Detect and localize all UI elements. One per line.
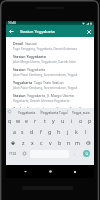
button[interactable]: Yogyakarta bbox=[6, 79, 94, 92]
button[interactable]: v bbox=[46, 137, 55, 148]
button[interactable]: Recent apps bbox=[69, 166, 80, 177]
button[interactable]: ?123 bbox=[6, 148, 20, 159]
staticText: ?123 bbox=[9, 151, 17, 156]
staticText: Stasiun Yogyakarta bbox=[20, 29, 55, 34]
button[interactable]: x bbox=[28, 137, 37, 148]
staticText: e bbox=[25, 117, 28, 124]
button[interactable]: Clear search bbox=[83, 26, 94, 37]
staticText: m bbox=[75, 139, 80, 146]
button[interactable]: Voice search bbox=[6, 108, 13, 115]
staticText: j bbox=[67, 128, 69, 135]
button[interactable]: j bbox=[63, 126, 72, 137]
staticText: Stasiun Yogyakarta bbox=[13, 54, 46, 59]
button[interactable]: y bbox=[49, 115, 58, 126]
staticText: r bbox=[34, 117, 37, 124]
button[interactable]: Yogya_auto bbox=[68, 108, 94, 115]
button[interactable]: a bbox=[10, 126, 18, 137]
button[interactable]: i bbox=[67, 115, 76, 126]
button[interactable]: m bbox=[73, 137, 82, 148]
staticText: Jalan Margo Utomo, Yogyakarta, Daerah Is… bbox=[13, 60, 77, 64]
button[interactable]: Angkut bbox=[6, 105, 94, 108]
staticText: Jalan Pasar Kembang, Sosromenduran, Yogy… bbox=[13, 86, 78, 90]
staticText: h bbox=[57, 128, 61, 135]
staticText: s bbox=[21, 128, 24, 135]
staticText: Yogya_auto bbox=[72, 110, 90, 114]
staticText: Yogyakarta, Jl. Margo Utomo bbox=[26, 93, 74, 98]
button[interactable]: u bbox=[58, 115, 67, 126]
button[interactable]: e bbox=[22, 115, 31, 126]
button[interactable]: q bbox=[6, 115, 14, 126]
button[interactable]: Detail bbox=[6, 40, 94, 53]
staticText: Yogyakarta Tugu bbox=[41, 110, 67, 114]
staticText: Stasiun bbox=[24, 41, 37, 46]
staticText: t bbox=[44, 117, 46, 124]
staticText: i bbox=[71, 117, 73, 124]
button[interactable]: Stasiun Yogyakarta bbox=[6, 53, 94, 66]
staticText: Jalan Pasar Kembang, Sosromenduran, Yogy… bbox=[13, 73, 78, 77]
staticText: Detail bbox=[13, 41, 24, 46]
staticText: Yogyakarta, Daerah Istimewa Yogyakarta bbox=[13, 99, 70, 103]
button[interactable]: o bbox=[76, 115, 85, 126]
staticText: k bbox=[75, 128, 78, 135]
button[interactable]: w bbox=[14, 115, 22, 126]
staticText: y bbox=[52, 117, 55, 124]
staticText: a bbox=[13, 128, 16, 135]
staticText: b bbox=[58, 139, 62, 146]
staticText: Stasiun bbox=[13, 67, 27, 72]
button[interactable]: s bbox=[18, 126, 27, 137]
button[interactable]: g bbox=[45, 126, 54, 137]
button[interactable]: z bbox=[19, 137, 28, 148]
staticText: Executive Lounge Stasiun Tugu Yo bbox=[26, 106, 83, 108]
staticText: f bbox=[40, 128, 42, 135]
staticText: n bbox=[67, 139, 71, 146]
staticText: Tugu Panggung, Yogyakarta, Daerah Istime… bbox=[13, 47, 77, 51]
staticText: o bbox=[79, 117, 83, 124]
button[interactable]: r bbox=[31, 115, 40, 126]
staticText: w bbox=[16, 117, 21, 124]
button[interactable]: Shift bbox=[6, 137, 19, 148]
button[interactable]: c bbox=[37, 137, 46, 148]
staticText: Yogyakarta bbox=[18, 110, 36, 114]
button[interactable]: d bbox=[27, 126, 36, 137]
staticText: Yogyakarta bbox=[27, 67, 46, 72]
button[interactable]: Home bbox=[45, 166, 56, 177]
button[interactable]: Back bbox=[20, 166, 31, 177]
staticText: Stasiun bbox=[13, 93, 26, 98]
staticText: 10:46 bbox=[8, 21, 17, 25]
button[interactable]: h bbox=[54, 126, 63, 137]
staticText: Yogyakarta bbox=[13, 80, 33, 85]
button[interactable]: Stasiun bbox=[6, 66, 94, 79]
staticText: z bbox=[22, 139, 25, 146]
button[interactable]: f bbox=[36, 126, 45, 137]
staticText: c bbox=[40, 139, 43, 146]
staticText: . bbox=[74, 151, 76, 156]
staticText: p bbox=[88, 117, 92, 124]
button[interactable]: p bbox=[85, 115, 94, 126]
staticText: v bbox=[49, 139, 52, 146]
staticText: d bbox=[30, 128, 34, 135]
staticText: q bbox=[8, 117, 12, 124]
button[interactable]: Backspace bbox=[82, 137, 94, 148]
staticText: x bbox=[31, 139, 34, 146]
staticText: l bbox=[85, 128, 87, 135]
button[interactable]: k bbox=[72, 126, 81, 137]
button[interactable]: n bbox=[64, 137, 73, 148]
button[interactable]: l bbox=[81, 126, 90, 137]
staticText: g bbox=[48, 128, 52, 135]
button[interactable]: Yogyakarta Tugu bbox=[41, 108, 67, 115]
button[interactable]: b bbox=[55, 137, 64, 148]
button[interactable]: Emoji bbox=[20, 148, 29, 159]
staticText: Tugu Train Station bbox=[33, 80, 64, 85]
staticText: Angkut bbox=[13, 106, 26, 108]
button[interactable]: Back bbox=[6, 26, 17, 37]
button[interactable]: t bbox=[40, 115, 49, 126]
button[interactable]: Stasiun bbox=[6, 92, 94, 105]
staticText: u bbox=[61, 117, 65, 124]
button[interactable]: Yogyakarta bbox=[13, 108, 40, 115]
button[interactable]: Search bbox=[79, 148, 94, 159]
